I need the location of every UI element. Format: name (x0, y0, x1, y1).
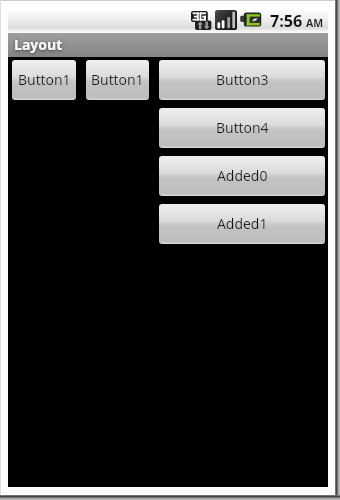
staticText: Button3 (216, 70, 269, 89)
staticText: Button1 (91, 70, 144, 89)
button[interactable]: Added0 (159, 156, 325, 196)
button[interactable]: Layout (8, 33, 328, 57)
other: Battery charging (240, 12, 262, 27)
button[interactable]: Button1 (12, 60, 76, 100)
staticText: Layout (14, 35, 63, 54)
other: Signal strength (215, 10, 237, 30)
staticText: 7:56 (270, 10, 303, 32)
staticText: Button4 (216, 118, 269, 137)
staticText: Added1 (217, 214, 268, 233)
button[interactable]: Button3 (159, 60, 325, 100)
staticText: Button1 (18, 70, 71, 89)
other: Mobile data 3G (191, 11, 212, 31)
staticText: Added0 (217, 166, 268, 185)
button[interactable]: Added1 (159, 204, 325, 244)
button[interactable]: Button4 (159, 108, 325, 148)
staticText: AM (306, 16, 324, 30)
button[interactable]: Button1 (86, 60, 149, 100)
